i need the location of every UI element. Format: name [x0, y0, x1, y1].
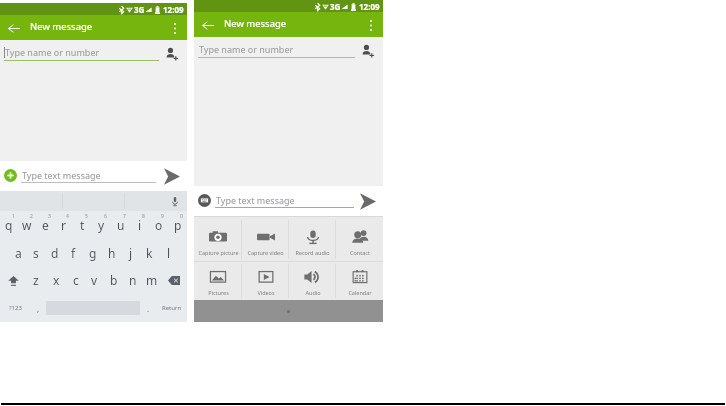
staticText: e: [42, 217, 49, 233]
staticText: c: [73, 272, 79, 288]
staticText: 4: [66, 213, 69, 220]
button[interactable]: h: [102, 239, 121, 266]
button[interactable]: Capture video: [242, 218, 289, 261]
staticText: Audio: [305, 289, 321, 296]
button[interactable]: n: [123, 266, 142, 294]
button[interactable]: x: [46, 266, 66, 294]
button[interactable]: Back: [199, 16, 217, 34]
staticText: ,: [37, 303, 40, 314]
button[interactable]: ,: [30, 294, 46, 322]
button[interactable]: s: [27, 239, 45, 266]
staticText: 5: [85, 213, 88, 220]
staticText: ?123: [9, 304, 22, 312]
staticText: k: [146, 245, 153, 261]
button[interactable]: j: [121, 239, 140, 266]
staticText: w: [22, 217, 32, 233]
staticText: 8: [142, 213, 145, 220]
button[interactable]: .: [140, 294, 156, 322]
staticText: Capture picture: [198, 249, 239, 256]
staticText: d: [51, 245, 59, 261]
button[interactable]: 1: [0, 211, 18, 239]
staticText: f: [71, 245, 76, 261]
button[interactable]: 4: [54, 211, 73, 239]
staticText: h: [108, 245, 116, 261]
staticText: 7: [123, 213, 126, 220]
button[interactable]: Voice input: [169, 195, 181, 207]
button[interactable]: 6: [92, 211, 111, 239]
button[interactable]: Back: [5, 19, 23, 37]
button[interactable]: ?123: [0, 294, 30, 322]
staticText: .: [147, 303, 150, 314]
staticText: v: [91, 272, 98, 288]
button[interactable]: Add contact: [359, 42, 375, 58]
staticText: x: [53, 272, 60, 288]
button[interactable]: More options: [167, 20, 183, 36]
button[interactable]: 2: [18, 211, 36, 239]
staticText: p: [174, 217, 182, 233]
button[interactable]: Send: [162, 166, 182, 186]
button[interactable]: l: [159, 239, 178, 266]
staticText: Capture video: [247, 249, 284, 256]
staticText: Videos: [257, 289, 275, 296]
button[interactable]: d: [45, 239, 64, 266]
staticText: 3: [48, 213, 51, 220]
button[interactable]: v: [85, 266, 104, 294]
staticText: r: [61, 217, 66, 233]
staticText: t: [80, 217, 85, 233]
button[interactable]: Return: [156, 294, 187, 322]
staticText: s: [33, 245, 39, 261]
button[interactable]: 9: [149, 211, 168, 239]
button[interactable]: f: [64, 239, 83, 266]
staticText: q: [5, 217, 13, 233]
button[interactable]: Pictures: [194, 262, 242, 300]
button[interactable]: Show keyboard: [198, 194, 211, 207]
staticText: i: [138, 217, 142, 233]
button[interactable]: Capture picture: [194, 218, 242, 261]
button[interactable]: 8: [130, 211, 149, 239]
staticText: l: [167, 245, 171, 261]
staticText: Type text message: [216, 194, 295, 206]
staticText: 9: [161, 213, 164, 220]
button[interactable]: m: [142, 266, 161, 294]
staticText: j: [129, 245, 133, 261]
staticText: z: [33, 272, 39, 288]
button[interactable]: Send: [358, 191, 378, 211]
button[interactable]: z: [26, 266, 46, 294]
button[interactable]: 5: [73, 211, 92, 239]
staticText: g: [89, 245, 97, 261]
staticText: 0: [180, 213, 183, 220]
staticText: Calendar: [348, 289, 372, 296]
staticText: n: [129, 272, 137, 288]
staticText: o: [155, 217, 163, 233]
staticText: 1: [12, 213, 15, 220]
button[interactable]: c: [66, 266, 85, 294]
button[interactable]: Add attachment: [4, 169, 17, 182]
button[interactable]: k: [140, 239, 159, 266]
staticText: Type name or number: [199, 43, 294, 55]
button[interactable]: Videos: [242, 262, 289, 300]
staticText: Record audio: [295, 249, 330, 256]
button[interactable]: 3: [36, 211, 54, 239]
button[interactable]: 0: [168, 211, 187, 239]
button[interactable]: 7: [111, 211, 130, 239]
staticText: 6: [104, 213, 107, 220]
staticText: 12:09: [359, 1, 380, 12]
button[interactable]: Contact: [336, 218, 383, 261]
button[interactable]: Audio: [289, 262, 336, 300]
button[interactable]: More options: [363, 17, 379, 33]
staticText: 2: [30, 213, 33, 220]
staticText: Type text message: [22, 169, 101, 181]
staticText: b: [110, 272, 118, 288]
staticText: Type name or number: [5, 46, 100, 58]
button[interactable]: Backspace: [161, 266, 187, 294]
button[interactable]: Calendar: [336, 262, 383, 300]
staticText: Pictures: [208, 289, 229, 296]
staticText: 3G: [330, 1, 341, 12]
button[interactable]: a: [9, 239, 27, 266]
button[interactable]: g: [83, 239, 102, 266]
button[interactable]: Shift: [0, 266, 26, 294]
button[interactable]: Add contact: [163, 45, 179, 61]
button[interactable]: b: [104, 266, 123, 294]
button[interactable]: Record audio: [289, 218, 336, 261]
